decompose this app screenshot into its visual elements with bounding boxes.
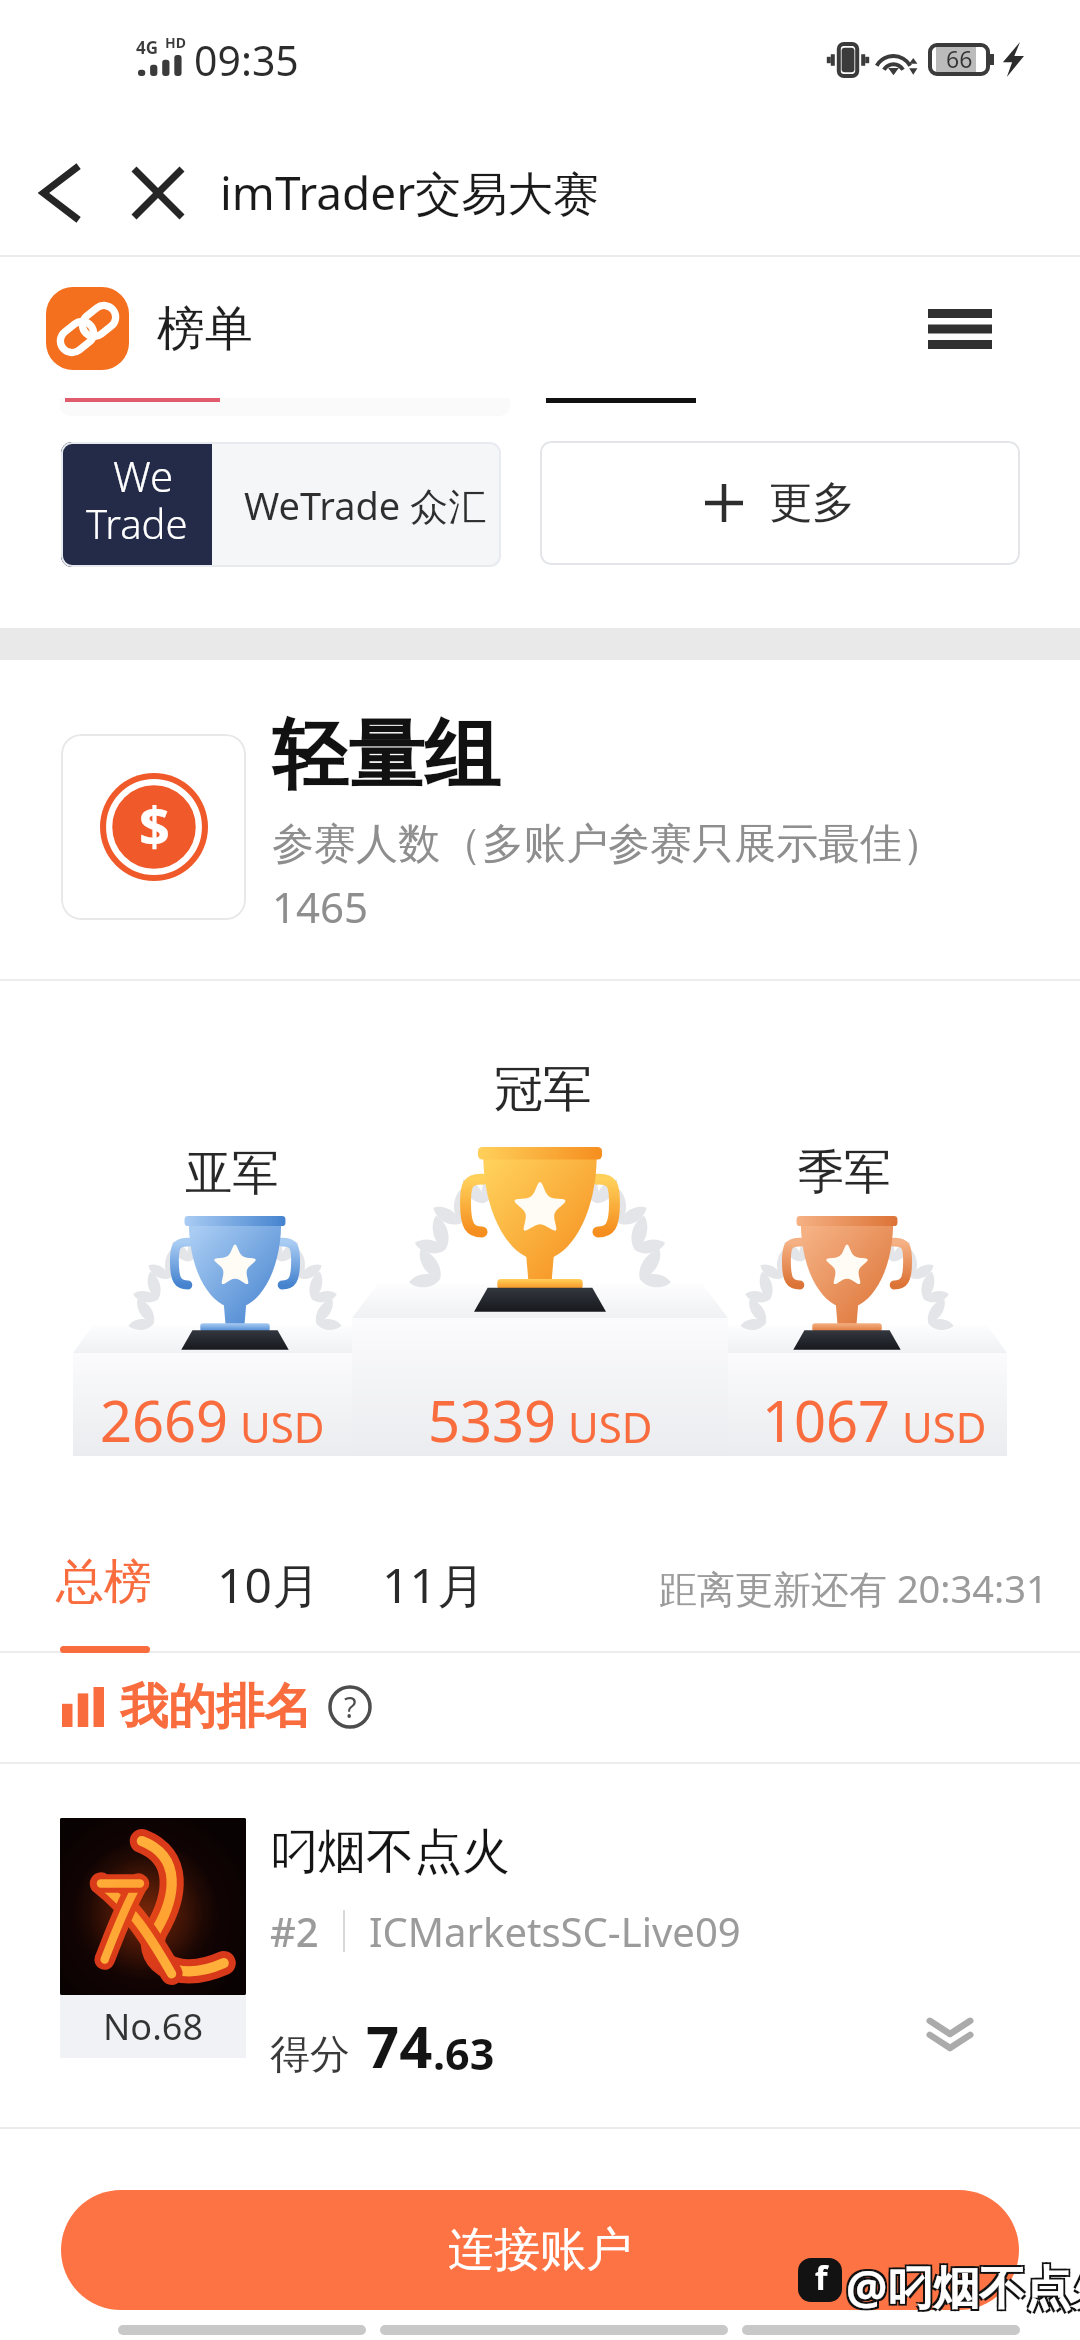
staticText: 2669 xyxy=(100,1382,229,1458)
button[interactable]: Menu xyxy=(905,274,1015,384)
button[interactable]: 更多 xyxy=(540,441,1020,565)
staticText: ICMarketsSC-Live09 xyxy=(369,1904,741,1958)
staticText: WeTrade 众汇 xyxy=(244,479,487,531)
staticText: 季军 xyxy=(797,1143,891,1202)
staticText: imTrader交易大赛 xyxy=(220,161,600,224)
staticText: No.68 xyxy=(103,2002,203,2051)
staticText: 距离更新还有 20:34:31 xyxy=(659,1562,1048,1614)
staticText: 1067 xyxy=(762,1382,891,1458)
staticText: 亚军 xyxy=(185,1144,279,1203)
staticText: 74 xyxy=(366,2006,433,2085)
staticText: 1465 xyxy=(272,878,369,935)
button[interactable]: Broker card xyxy=(540,398,990,416)
staticText: 66 xyxy=(946,43,973,74)
staticText: $ xyxy=(139,788,170,862)
staticText: HD xyxy=(165,33,186,52)
staticText: Trade xyxy=(86,496,188,550)
staticText: 轻量组 xyxy=(272,708,500,804)
staticText: f xyxy=(815,2258,828,2300)
button[interactable]: Broker card xyxy=(60,398,510,416)
staticText: 11月 xyxy=(382,1552,485,1618)
staticText: ? xyxy=(344,1687,357,1726)
staticText: @叼烟不点火 xyxy=(844,2253,1080,2316)
button[interactable]: 10月 xyxy=(203,1526,333,1636)
staticText: 10月 xyxy=(217,1552,320,1618)
staticText: USD xyxy=(240,1398,325,1455)
staticText: @叼烟不点火 xyxy=(844,2257,1080,2320)
staticText: 参赛人数（多账户参赛只展示最佳） xyxy=(272,818,944,871)
button[interactable]: No.68 xyxy=(0,1764,1080,2127)
staticText: 得分 xyxy=(270,2029,350,2079)
button[interactable]: 11月 xyxy=(368,1526,498,1636)
staticText: 09:35 xyxy=(194,32,299,88)
staticText: 榜单 xyxy=(157,299,253,359)
staticText: 我的排名 xyxy=(120,1677,312,1737)
staticText: USD xyxy=(568,1398,653,1455)
button[interactable]: Expand xyxy=(905,1994,995,2074)
staticText: We xyxy=(113,447,174,504)
staticText: 4G xyxy=(136,36,159,59)
staticText: 总榜 xyxy=(56,1552,152,1612)
staticText: 冠军 xyxy=(494,1059,592,1121)
staticText: #2 xyxy=(270,1904,319,1958)
staticText: @叼烟不点火 xyxy=(848,2253,1080,2316)
staticText: 更多 xyxy=(769,476,855,530)
staticText: 5339 xyxy=(428,1382,557,1458)
button[interactable]: Back xyxy=(20,130,102,255)
staticText: 叼烟不点火 xyxy=(270,1822,510,1882)
button[interactable]: 连接账户 xyxy=(61,2190,1019,2310)
staticText: .63 xyxy=(433,2024,495,2083)
button[interactable]: Close xyxy=(118,130,198,255)
staticText: @叼烟不点火 xyxy=(848,2257,1080,2320)
button[interactable]: We xyxy=(61,442,501,567)
button[interactable]: 我的排名 xyxy=(62,1653,1080,1761)
staticText: @叼烟不点火 xyxy=(846,2255,1080,2318)
staticText: USD xyxy=(902,1398,987,1455)
button[interactable]: 总榜 xyxy=(40,1526,168,1636)
staticText: 连接账户 xyxy=(448,2221,632,2279)
